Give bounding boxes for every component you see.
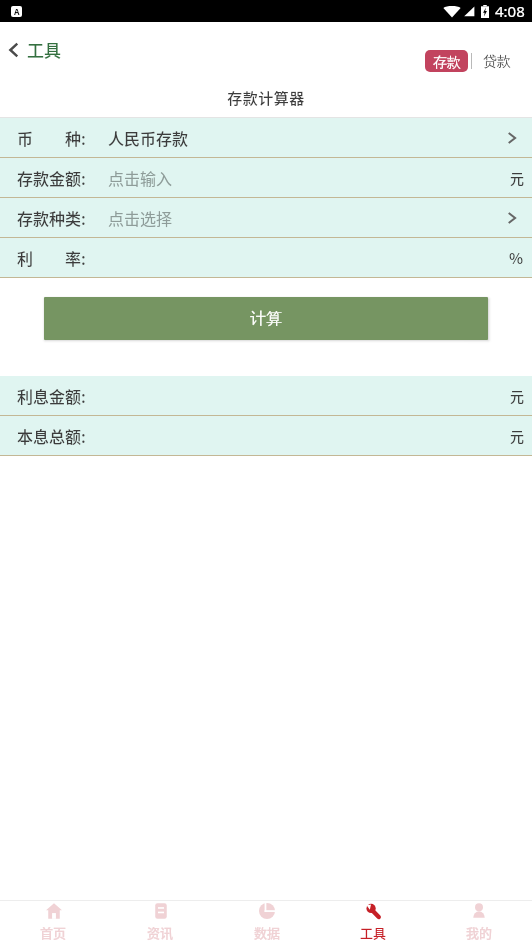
button[interactable]: 利 率: [0,238,532,277]
button[interactable]: 利息金额: [0,376,532,415]
staticText: 存款 [433,54,461,72]
staticText: 存款种类: [17,206,86,229]
staticText: 工具 [27,37,61,62]
staticText: 点击选择 [108,206,173,229]
button[interactable]: 首页 [0,901,107,944]
staticText: 元 [510,386,524,406]
staticText: % [509,247,524,269]
button[interactable]: 本息总额: [0,416,532,455]
staticText: A [14,6,20,17]
button[interactable]: 币 种: [0,118,532,157]
button[interactable]: 返回 [0,31,71,68]
staticText: 元 [510,168,524,188]
button[interactable]: 存款 [425,50,468,72]
button[interactable]: 我的 [426,901,532,944]
staticText: 点击输入 [108,166,173,189]
staticText: 人民币存款 [108,126,189,149]
staticText: 元 [510,426,524,446]
button[interactable]: 工具 [320,901,426,944]
staticText: 利息金额: [17,384,86,407]
button[interactable]: 计算 [44,297,488,340]
staticText: 贷款 [483,53,511,71]
staticText: 利 率: [17,246,86,269]
staticText: 存款金额: [17,166,86,189]
staticText: 本息总额: [17,424,86,447]
staticText: 数据 [254,923,281,942]
button[interactable]: 贷款 [472,48,514,74]
button[interactable]: 存款种类: [0,198,532,237]
staticText: 我的 [466,923,493,942]
staticText: 工具 [360,923,387,942]
staticText: 币 种: [17,126,86,149]
staticText: 首页 [40,923,67,942]
staticText: 资讯 [147,923,174,942]
staticText: 计算 [250,309,282,329]
staticText: 4:08 [495,1,525,21]
button[interactable]: 数据 [214,901,320,944]
staticText: 存款计算器 [227,87,305,109]
button[interactable]: 存款金额: [0,158,532,197]
button[interactable]: 资讯 [107,901,214,944]
